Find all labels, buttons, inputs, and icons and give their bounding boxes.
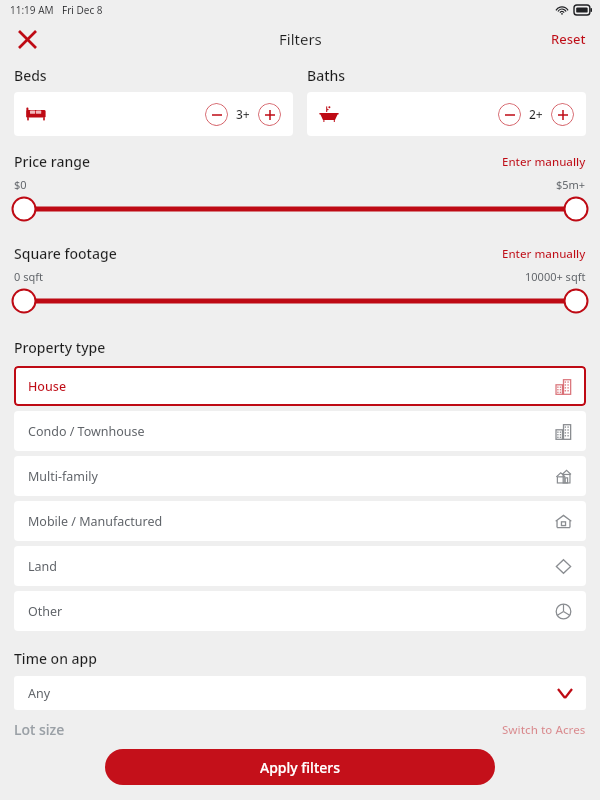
button[interactable] xyxy=(0,288,600,314)
button[interactable]: Enter manually xyxy=(502,246,586,262)
button[interactable]: Increase xyxy=(551,103,574,126)
button[interactable]: Other xyxy=(28,591,572,631)
staticText: Apply filters xyxy=(260,758,341,777)
button[interactable]: Decrease xyxy=(498,103,521,126)
staticText: Beds xyxy=(14,66,47,85)
staticText: Reset xyxy=(551,30,586,48)
staticText: 10000+ sqft xyxy=(525,269,586,284)
button[interactable]: Land xyxy=(28,546,572,586)
staticText: Mobile / Manufactured xyxy=(28,513,163,530)
button[interactable]: Decrease xyxy=(26,92,281,136)
staticText: Condo / Townhouse xyxy=(28,423,145,440)
staticText: Time on app xyxy=(14,649,97,668)
staticText: Filters xyxy=(279,29,322,49)
staticText: Multi-family xyxy=(28,468,98,485)
staticText: Switch to Acres xyxy=(502,722,586,738)
staticText: Enter manually xyxy=(502,154,586,170)
staticText: Square footage xyxy=(14,244,117,263)
button[interactable]: Reset xyxy=(551,30,586,48)
staticText: Fri Dec 8 xyxy=(62,3,103,17)
staticText: Land xyxy=(28,558,57,575)
button[interactable] xyxy=(0,196,600,222)
staticText: Property type xyxy=(14,338,106,357)
button[interactable]: Close xyxy=(14,26,40,52)
button[interactable]: Enter manually xyxy=(502,154,586,170)
staticText: Lot size xyxy=(14,720,65,739)
button[interactable]: Any xyxy=(28,676,572,710)
staticText: $0 xyxy=(14,177,27,192)
staticText: $5m+ xyxy=(556,177,586,192)
staticText: Price range xyxy=(14,152,90,171)
staticText: Enter manually xyxy=(502,246,586,262)
button[interactable]: Apply filters xyxy=(105,749,495,785)
staticText: 11:19 AM xyxy=(10,3,54,17)
button[interactable]: Decrease xyxy=(205,103,228,126)
staticText: Baths xyxy=(307,66,346,85)
button[interactable]: Multi-family xyxy=(28,456,572,496)
staticText: Any xyxy=(28,685,51,702)
button[interactable]: Increase xyxy=(258,103,281,126)
staticText: 0 sqft xyxy=(14,269,43,284)
staticText: Other xyxy=(28,603,63,620)
staticText: 3+ xyxy=(236,106,250,122)
staticText: House xyxy=(28,378,67,395)
staticText: 2+ xyxy=(529,106,543,122)
button[interactable]: House xyxy=(28,366,572,406)
button[interactable]: Mobile / Manufactured xyxy=(28,501,572,541)
button[interactable]: Condo / Townhouse xyxy=(28,411,572,451)
button[interactable]: Decrease xyxy=(319,92,574,136)
